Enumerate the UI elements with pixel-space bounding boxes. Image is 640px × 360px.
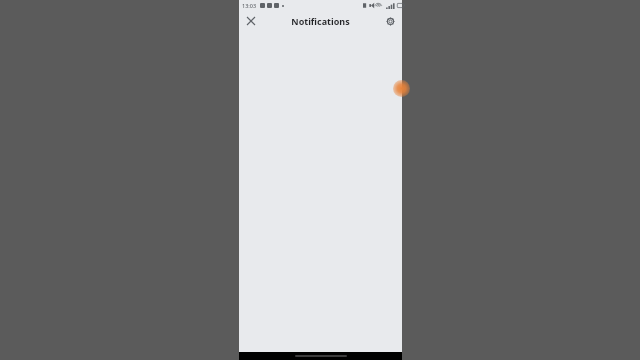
- button[interactable]: Settings: [382, 13, 398, 29]
- button[interactable]: Notification badge: [393, 80, 410, 97]
- staticText: Notifications: [291, 15, 350, 27]
- staticText: 13:03: [242, 2, 257, 9]
- button[interactable]: Close: [243, 13, 259, 29]
